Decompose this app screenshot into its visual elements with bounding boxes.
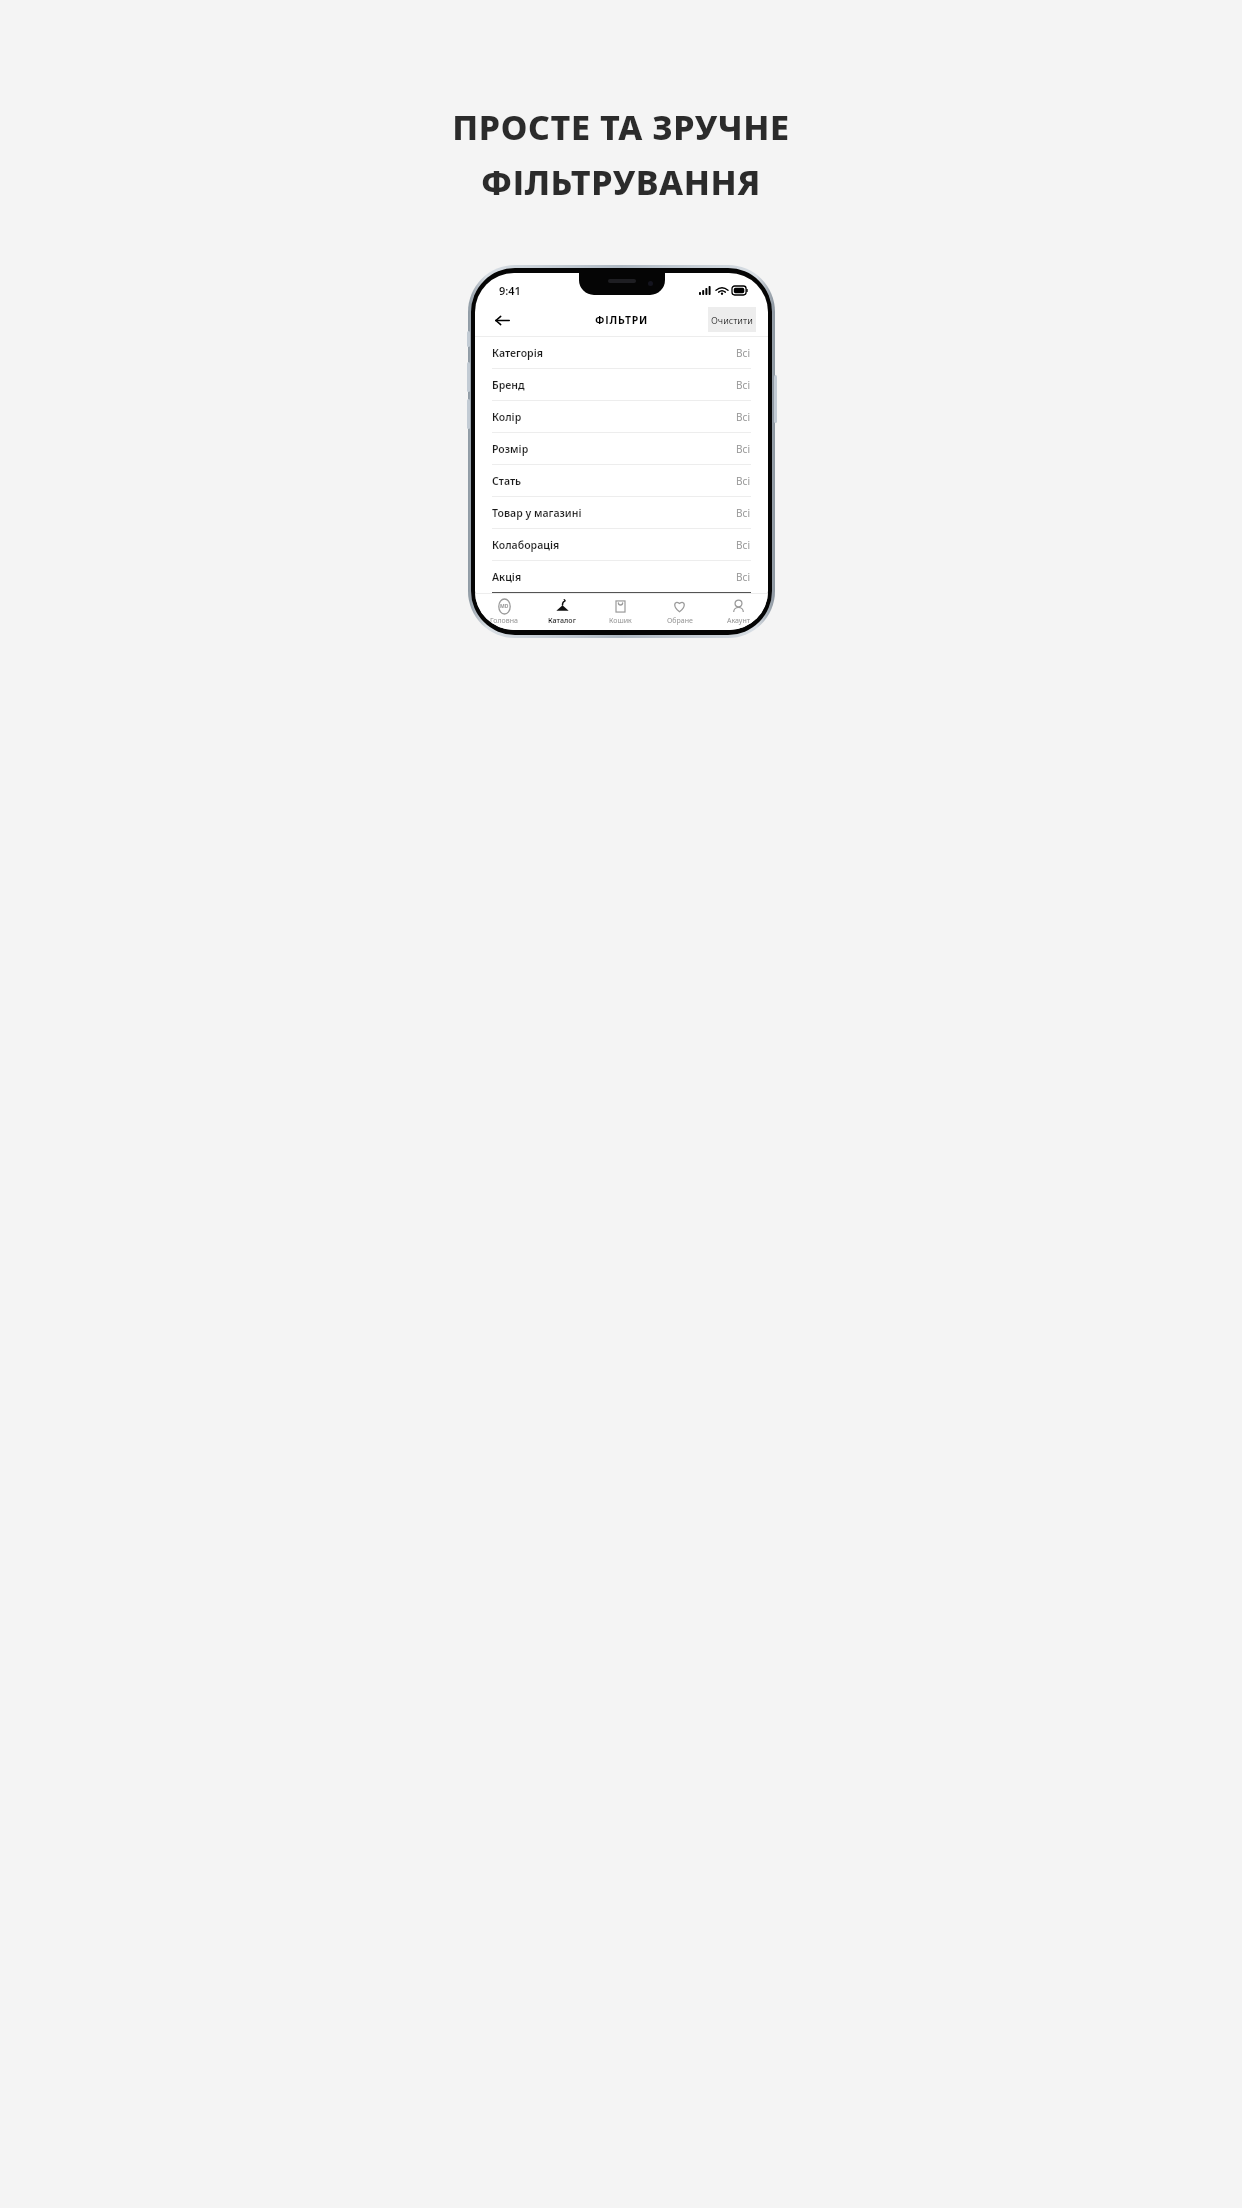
button[interactable]: Акаунт bbox=[709, 594, 768, 630]
staticText: Всі bbox=[736, 474, 751, 488]
staticText: ФІЛЬТРУВАННЯ bbox=[481, 159, 761, 205]
staticText: Категорія bbox=[492, 346, 543, 360]
button[interactable]: Товар у магазині bbox=[492, 497, 751, 529]
staticText: Обране bbox=[667, 616, 693, 626]
button[interactable]: Обране bbox=[650, 594, 709, 630]
staticText: Стать bbox=[492, 474, 522, 488]
staticText: Колір bbox=[492, 410, 522, 424]
button[interactable]: Бренд bbox=[492, 369, 751, 401]
staticText: Всі bbox=[736, 506, 751, 520]
staticText: Всі bbox=[736, 570, 751, 584]
staticText: Акаунт bbox=[727, 616, 750, 626]
button[interactable]: Каталог bbox=[533, 594, 591, 630]
button[interactable]: Колаборація bbox=[492, 529, 751, 561]
button[interactable]: Колір bbox=[492, 401, 751, 433]
staticText: Колаборація bbox=[492, 538, 560, 552]
staticText: Очистити bbox=[711, 314, 753, 326]
staticText: Головна bbox=[490, 616, 518, 626]
button[interactable]: Кошик bbox=[591, 594, 650, 630]
button[interactable]: Стать bbox=[492, 465, 751, 497]
staticText: Кошик bbox=[609, 616, 632, 626]
button[interactable]: MD bbox=[475, 594, 533, 630]
staticText: Всі bbox=[736, 410, 751, 424]
staticText: Товар у магазині bbox=[492, 506, 582, 520]
button[interactable]: Категорія bbox=[492, 337, 751, 369]
staticText: Розмір bbox=[492, 442, 529, 456]
staticText: Всі bbox=[736, 538, 751, 552]
staticText: ФІЛЬТРИ bbox=[595, 313, 649, 327]
staticText: Бренд bbox=[492, 378, 525, 392]
button[interactable]: Очистити bbox=[708, 307, 756, 332]
staticText: MD bbox=[500, 603, 509, 610]
staticText: Всі bbox=[736, 346, 751, 360]
button[interactable]: Back bbox=[489, 307, 515, 333]
staticText: 9:41 bbox=[499, 283, 521, 298]
staticText: ПРОСТЕ ТА ЗРУЧНЕ bbox=[452, 104, 790, 150]
button[interactable]: Розмір bbox=[492, 433, 751, 465]
staticText: Всі bbox=[736, 442, 751, 456]
staticText: Каталог bbox=[548, 616, 576, 626]
button[interactable]: Акція bbox=[492, 561, 751, 593]
staticText: Акція bbox=[492, 570, 522, 584]
staticText: Всі bbox=[736, 378, 751, 392]
